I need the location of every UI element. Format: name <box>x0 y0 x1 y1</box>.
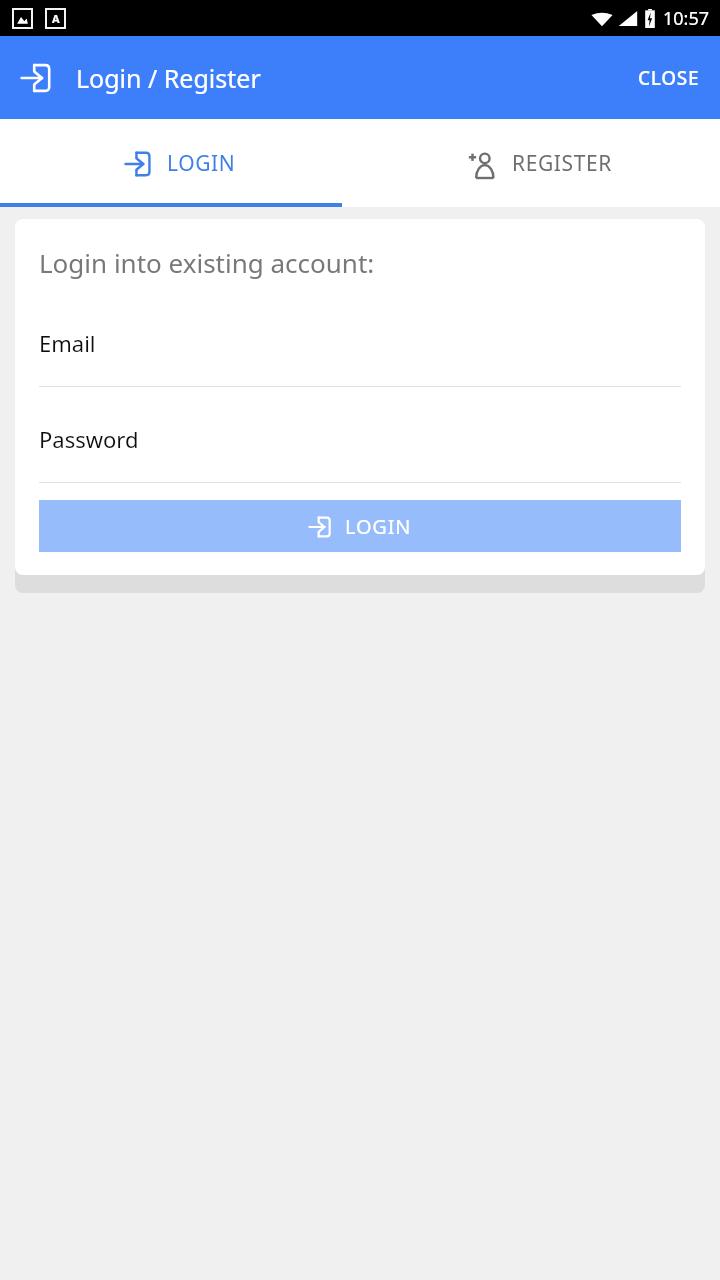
staticText: REGISTER <box>512 149 612 178</box>
staticText: A <box>52 11 60 26</box>
staticText: LOGIN <box>345 513 412 540</box>
staticText: CLOSE <box>638 65 700 91</box>
button[interactable]: Login <box>14 56 58 100</box>
staticText: Password <box>39 424 139 454</box>
button[interactable]: Email <box>39 328 681 387</box>
staticText: Login into existing account: <box>39 245 375 280</box>
staticText: LOGIN <box>167 149 236 178</box>
button[interactable]: REGISTER <box>360 119 720 207</box>
staticText: Login / Register <box>76 61 261 95</box>
button[interactable]: LOGIN <box>39 500 681 552</box>
staticText: 10:57 <box>663 6 710 31</box>
staticText: Email <box>39 328 96 358</box>
button[interactable]: Password <box>39 424 681 483</box>
button[interactable]: LOGIN <box>0 119 360 207</box>
button[interactable]: CLOSE <box>618 51 720 105</box>
